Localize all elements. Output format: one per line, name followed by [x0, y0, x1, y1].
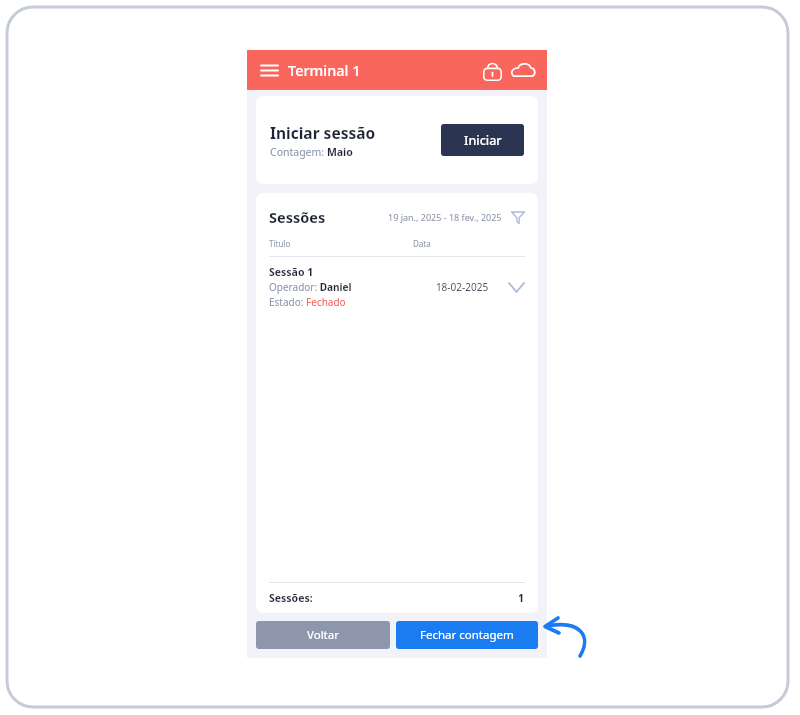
button[interactable]: Lock [478, 56, 506, 84]
staticText: Contagem: Maio [270, 145, 353, 159]
staticText: Iniciar [464, 132, 502, 149]
staticText: Estado: Fechado [269, 295, 346, 309]
button[interactable]: Voltar [256, 621, 390, 649]
staticText: Terminal 1 [288, 60, 361, 80]
staticText: Sessões [269, 207, 326, 227]
button[interactable]: Cloud sync [509, 56, 537, 84]
staticText: Título [269, 238, 291, 249]
button[interactable]: Fechar contagem [396, 621, 538, 649]
staticText: Sessão 1 [269, 265, 314, 279]
staticText: 19 jan., 2025 - 18 fev., 2025 [388, 211, 502, 223]
button[interactable]: Iniciar [441, 124, 524, 156]
button[interactable]: Sessão 1 [256, 257, 538, 317]
staticText: Voltar [307, 627, 339, 643]
button[interactable]: Menu [255, 56, 283, 84]
staticText: Fechar contagem [420, 627, 514, 643]
button[interactable]: Expand session [505, 276, 527, 298]
staticText: Iniciar sessão [270, 122, 376, 143]
staticText: 1 [518, 591, 525, 605]
staticText: Sessões: [269, 591, 313, 605]
staticText: 18-02-2025 [419, 280, 505, 294]
staticText: Operador: Daniel [269, 280, 352, 294]
staticText: Data [413, 238, 431, 249]
button[interactable]: Filter [509, 208, 527, 226]
